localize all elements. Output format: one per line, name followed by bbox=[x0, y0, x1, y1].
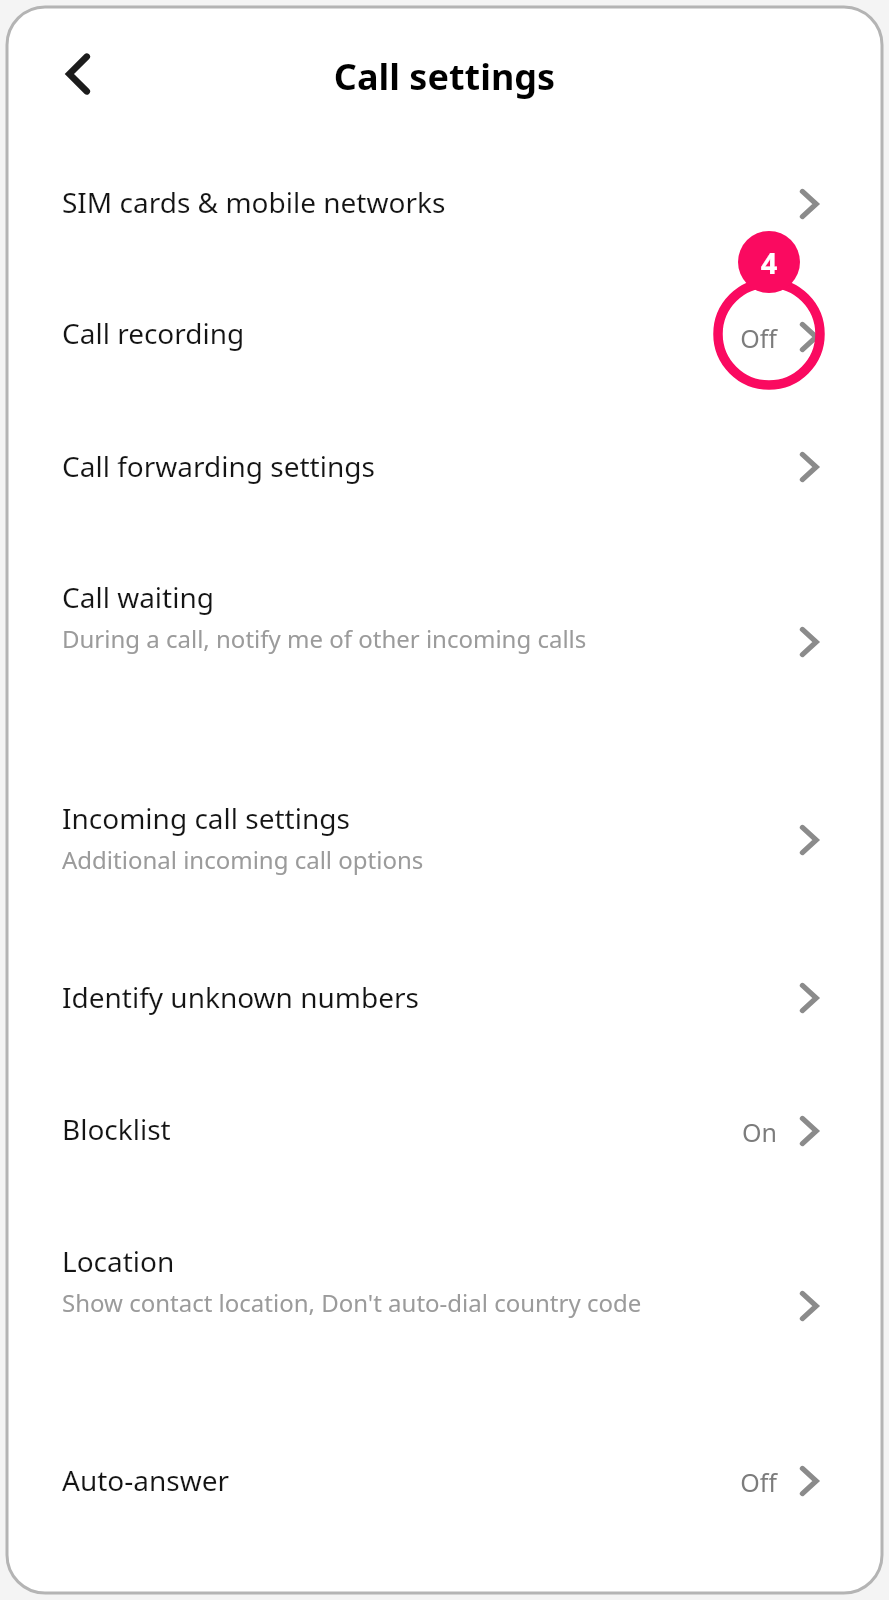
staticText: Auto-answer bbox=[62, 1461, 230, 1499]
staticText: Incoming call settings bbox=[62, 799, 350, 837]
button[interactable] bbox=[7, 1203, 882, 1417]
button[interactable] bbox=[7, 277, 882, 395]
staticText: Off bbox=[607, 321, 777, 355]
staticText: Call settings bbox=[7, 52, 882, 101]
button[interactable] bbox=[7, 539, 882, 752]
button[interactable] bbox=[7, 942, 882, 1057]
staticText: Call waiting bbox=[62, 578, 214, 616]
staticText: Show contact location, Don't auto-dial c… bbox=[62, 1286, 722, 1319]
staticText: Off bbox=[607, 1465, 777, 1499]
staticText: On bbox=[607, 1115, 777, 1149]
staticText: SIM cards & mobile networks bbox=[62, 183, 446, 221]
staticText: Blocklist bbox=[62, 1110, 171, 1148]
staticText: During a call, notify me of other incomi… bbox=[62, 622, 722, 655]
staticText: Identify unknown numbers bbox=[62, 978, 419, 1016]
button[interactable] bbox=[7, 1427, 882, 1542]
button[interactable] bbox=[7, 147, 882, 262]
staticText: 4 bbox=[753, 243, 785, 282]
staticText: Call forwarding settings bbox=[62, 447, 375, 485]
button[interactable] bbox=[7, 762, 882, 927]
staticText: Call recording bbox=[62, 314, 245, 352]
staticText: Location bbox=[62, 1242, 175, 1280]
button[interactable]: Back bbox=[52, 43, 112, 105]
staticText: Additional incoming call options bbox=[62, 843, 722, 876]
button[interactable] bbox=[7, 1070, 882, 1187]
button[interactable] bbox=[7, 407, 882, 525]
